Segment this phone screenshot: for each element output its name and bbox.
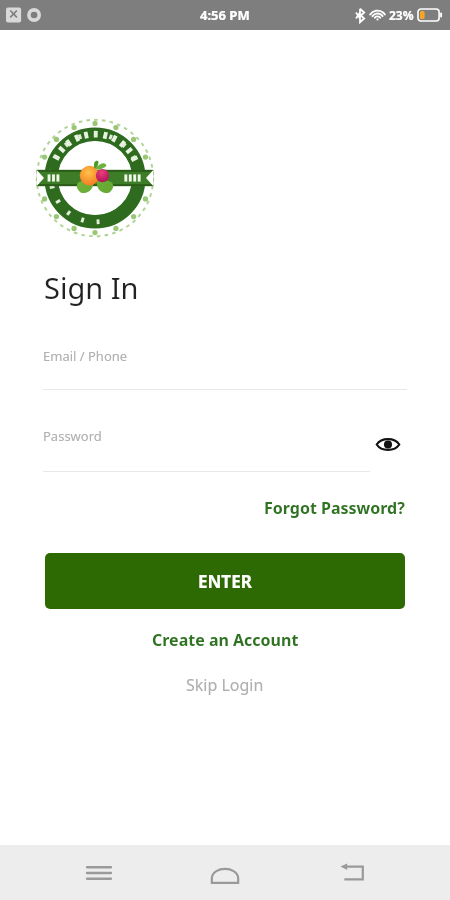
- button[interactable]: Forgot Password?: [262, 494, 407, 522]
- button[interactable]: Show password: [373, 429, 403, 459]
- button[interactable]: [0, 421, 450, 472]
- staticText: Create an Account: [152, 629, 299, 651]
- staticText: 23%: [389, 7, 414, 23]
- button[interactable]: Email / Phone: [0, 340, 450, 390]
- button[interactable]: Recent apps: [71, 845, 127, 900]
- button[interactable]: Create an Account: [146, 626, 305, 654]
- staticText: Skip Login: [186, 674, 264, 696]
- staticText: Email / Phone: [43, 347, 128, 365]
- button[interactable]: ENTER: [45, 553, 405, 609]
- staticText: Forgot Password?: [264, 497, 405, 519]
- button[interactable]: Home: [197, 845, 253, 900]
- button[interactable]: Skip Login: [180, 671, 270, 699]
- staticText: ENTER: [198, 570, 252, 593]
- staticText: Password: [43, 427, 102, 445]
- button[interactable]: Back: [324, 845, 380, 900]
- staticText: 4:56 PM: [200, 6, 250, 24]
- staticText: Sign In: [44, 268, 139, 307]
